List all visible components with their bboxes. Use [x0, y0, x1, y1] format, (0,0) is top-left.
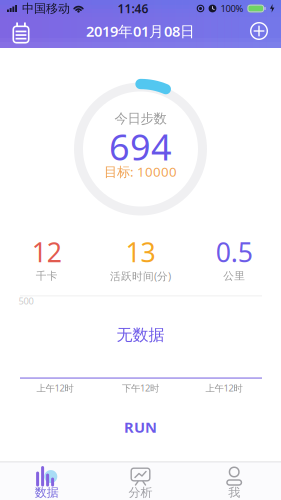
staticText: 694 [109, 123, 172, 170]
staticText: 活跃时间(分) [110, 269, 171, 283]
button[interactable]: 我 [187, 461, 281, 500]
staticText: 下午12时 [122, 382, 159, 394]
staticText: RUN [124, 417, 157, 437]
staticText: 13 [125, 234, 155, 270]
staticText: 目标: 10000 [104, 163, 177, 180]
staticText: 上午12时 [205, 382, 242, 394]
staticText: 我 [228, 485, 240, 500]
button[interactable]: Add [248, 20, 270, 42]
staticText: 中国移动 [22, 1, 70, 16]
button[interactable]: RUN [110, 415, 170, 439]
staticText: 上午12时 [36, 382, 73, 394]
staticText: 今日步数 [114, 110, 166, 127]
staticText: 0.5 [216, 234, 253, 270]
staticText: 100% [220, 2, 243, 15]
button[interactable]: 分析 [94, 461, 187, 500]
staticText: 数据 [35, 485, 59, 500]
staticText: 公里 [223, 269, 245, 282]
staticText: 11:46 [117, 0, 148, 16]
staticText: 2019年01月08日 [86, 21, 195, 41]
button[interactable]: 数据 [0, 461, 94, 500]
staticText: 无数据 [116, 325, 164, 345]
button[interactable]: Calendar [9, 20, 33, 44]
staticText: 500 [18, 295, 33, 307]
staticText: 12 [32, 234, 62, 270]
staticText: 分析 [128, 485, 152, 500]
staticText: 千卡 [36, 269, 58, 282]
